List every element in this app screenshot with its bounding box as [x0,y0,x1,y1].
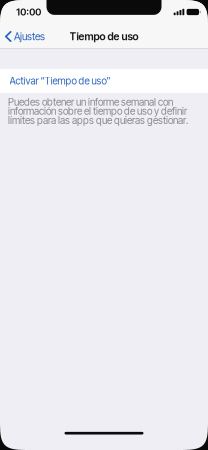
staticText: Activar “Tiempo de uso” [10,75,111,87]
staticText: Tiempo de uso [69,30,138,43]
button[interactable]: Back to Ajustes [0,25,51,48]
staticText: Puedes obtener un informe semanal con in… [8,96,188,126]
button[interactable]: Activar “Tiempo de uso” [0,69,208,93]
staticText: 10:00 [16,6,41,18]
staticText: Ajustes [14,30,45,43]
